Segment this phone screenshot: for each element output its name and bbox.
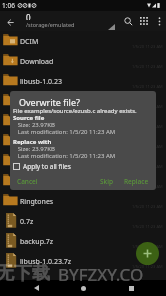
button[interactable]: Back — [24, 280, 48, 296]
button[interactable]: Ringtones — [0, 191, 166, 211]
staticText: Replace with — [13, 138, 52, 145]
button[interactable]: Notifications — [0, 131, 166, 151]
staticText: BYFZXY.CO — [58, 263, 144, 286]
staticText: Download — [20, 57, 54, 67]
staticText: Podcasts — [20, 177, 50, 187]
staticText: Overwrite file? — [19, 96, 80, 106]
staticText: 1/5/20 11:23 AM — [132, 84, 163, 89]
staticText: 1/5/20 11:23 AM — [132, 64, 163, 69]
button[interactable]: libusb-1.0.23 — [0, 71, 166, 91]
button[interactable]: 0.7z — [0, 211, 166, 231]
staticText: backup.7z — [20, 237, 54, 247]
staticText: Ringtones — [20, 197, 54, 207]
staticText: Cancel — [17, 177, 38, 186]
staticText: 1/5/20 11:23 AM — [132, 124, 163, 129]
staticText: Skip — [100, 177, 113, 186]
button[interactable]: Download — [0, 51, 166, 71]
staticText: /storage/emulated — [26, 21, 75, 28]
staticText: Source file — [13, 114, 45, 121]
button[interactable]: Replace — [121, 176, 152, 187]
staticText: 1/5/20 11:23 AM — [132, 244, 163, 249]
staticText: Size: 23.97KB — [13, 121, 55, 128]
button[interactable]: Cancel — [14, 176, 41, 187]
staticText: 1/5/20 11:23 AM — [132, 264, 163, 269]
button[interactable]: Home — [71, 280, 95, 296]
staticText: File examples/source/ezusb.c already exi… — [13, 107, 137, 114]
button[interactable]: Grid view — [136, 11, 152, 31]
staticText: 0 — [26, 12, 31, 20]
button[interactable]: libusb-1.0.23.7z — [0, 251, 166, 271]
staticText: Last modification: 1/5/20 11:23 AM — [13, 152, 116, 159]
button[interactable]: DCIM — [0, 31, 166, 51]
staticText: 无下载 — [0, 262, 50, 285]
button[interactable]: More options — [152, 11, 166, 31]
staticText: 1/5/20 11:23 AM — [132, 104, 163, 109]
button[interactable]: Music — [0, 111, 166, 131]
staticText: Replace — [124, 177, 149, 186]
button[interactable]: Apply to all files — [13, 161, 71, 172]
staticText: Notifications — [20, 137, 62, 147]
staticText: libusb-1.0.23 — [20, 77, 62, 87]
button[interactable]: Podcasts — [0, 171, 166, 191]
button[interactable]: Search — [120, 11, 136, 31]
staticText: libusb-1.0.23.7z — [20, 257, 72, 267]
staticText: Last modification: 1/5/20 11:23 AM — [13, 128, 116, 135]
button[interactable]: Add — [136, 242, 159, 265]
button[interactable]: Recents — [119, 280, 143, 296]
button[interactable]: Pictures — [0, 151, 166, 171]
staticText: 1/5/20 11:23 AM — [132, 204, 163, 209]
staticText: 0.7z — [20, 217, 34, 227]
button[interactable]: Back — [0, 11, 26, 31]
staticText: Movies — [20, 97, 44, 107]
button[interactable]: Skip — [97, 176, 116, 187]
staticText: Pictures — [20, 157, 47, 167]
staticText: 1/5/20 11:23 AM — [132, 164, 163, 169]
staticText: Music — [20, 117, 40, 127]
staticText: Apply to all files — [23, 162, 71, 171]
staticText: 1/5/20 11:23 AM — [132, 184, 163, 189]
staticText: DCIM — [20, 37, 39, 47]
staticText: 1/5/20 11:23 AM — [132, 224, 163, 229]
staticText: Size: 23.97KB — [13, 145, 55, 152]
button[interactable]: Sort — [106, 11, 120, 31]
staticText: 1:06 — [2, 1, 15, 10]
staticText: 1/5/20 11:23 AM — [132, 144, 163, 149]
button[interactable]: Movies — [0, 91, 166, 111]
button[interactable]: backup.7z — [0, 231, 166, 251]
staticText: 1/5/20 11:23 AM — [132, 44, 163, 49]
